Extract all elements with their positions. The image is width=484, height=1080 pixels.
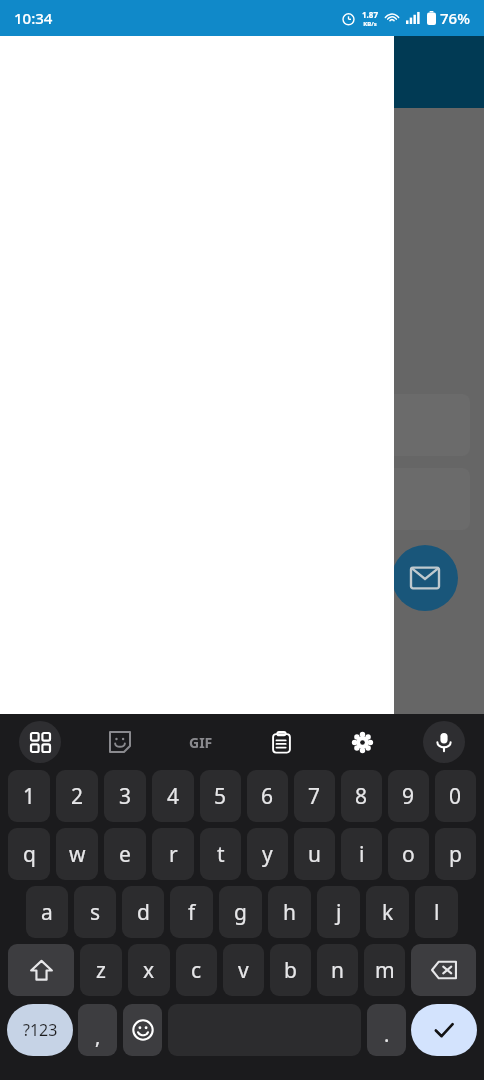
staticText: ,: [95, 1023, 101, 1050]
staticText: k: [382, 898, 394, 927]
staticText: 2: [71, 782, 84, 811]
staticText: c: [191, 956, 202, 985]
button[interactable]: b: [270, 944, 311, 996]
staticText: r: [169, 840, 178, 869]
staticText: l: [434, 898, 440, 927]
staticText: 76%: [440, 8, 470, 28]
staticText: 3: [119, 782, 132, 811]
button[interactable]: Send: [336, 1007, 394, 1080]
staticText: 1.87: [362, 9, 378, 20]
button[interactable]: j: [317, 886, 360, 938]
staticText: d: [137, 898, 150, 927]
button[interactable]: f: [170, 886, 213, 938]
button[interactable]: 7: [294, 770, 335, 822]
staticText: v: [238, 956, 249, 985]
button[interactable]: 6: [247, 770, 288, 822]
button[interactable]: 1: [8, 770, 50, 822]
staticText: e: [119, 840, 131, 869]
button[interactable]: x: [128, 944, 170, 996]
button[interactable]: .: [367, 1004, 406, 1056]
staticText: m: [375, 956, 395, 985]
button[interactable]: ,: [78, 1004, 117, 1056]
staticText: w: [69, 840, 86, 869]
staticText: x: [143, 956, 155, 985]
staticText: 1: [23, 782, 36, 811]
staticText: o: [402, 840, 415, 869]
button[interactable]: ?123: [7, 1004, 73, 1056]
button[interactable]: z: [80, 944, 122, 996]
staticText: p: [449, 840, 462, 869]
button[interactable]: Clipboard: [241, 714, 322, 770]
staticText: 6: [261, 782, 274, 811]
staticText: 0: [449, 782, 462, 811]
button[interactable]: Emoji: [123, 1004, 162, 1056]
button[interactable]: Stickers: [80, 714, 160, 770]
button[interactable]: Shift: [8, 944, 74, 996]
button[interactable]: 8: [341, 770, 382, 822]
button[interactable]: n: [317, 944, 358, 996]
button[interactable]: u: [294, 828, 335, 880]
button[interactable]: Backspace: [411, 944, 476, 996]
button[interactable]: y: [247, 828, 288, 880]
staticText: Hey! come Play with me.: [10, 1031, 336, 1057]
button[interactable]: d: [122, 886, 164, 938]
button[interactable]: k: [366, 886, 409, 938]
staticText: GIF: [189, 733, 213, 752]
staticText: 5: [214, 782, 227, 811]
button[interactable]: m: [364, 944, 405, 996]
button[interactable]: Settings: [322, 714, 403, 770]
button[interactable]: q: [8, 828, 50, 880]
staticText: j: [336, 898, 342, 927]
button[interactable]: v: [223, 944, 264, 996]
staticText: h: [283, 898, 296, 927]
staticText: .: [384, 1021, 390, 1048]
button[interactable]: 9: [388, 770, 429, 822]
button[interactable]: h: [268, 886, 311, 938]
staticText: u: [308, 840, 321, 869]
staticText: 9: [402, 782, 415, 811]
staticText: a: [41, 898, 53, 927]
button[interactable]: Apps: [0, 714, 80, 770]
button[interactable]: p: [435, 828, 476, 880]
button[interactable]: Voice input: [403, 714, 484, 770]
button[interactable]: 0: [435, 770, 476, 822]
staticText: b: [284, 956, 297, 985]
button[interactable]: o: [388, 828, 429, 880]
button[interactable]: w: [56, 828, 98, 880]
button[interactable]: r: [152, 828, 194, 880]
button[interactable]: g: [219, 886, 262, 938]
button[interactable]: i: [341, 828, 382, 880]
staticText: n: [331, 956, 344, 985]
button[interactable]: a: [26, 886, 68, 938]
staticText: g: [234, 898, 247, 927]
staticText: ?123: [23, 1019, 58, 1041]
staticText: y: [262, 840, 273, 869]
button[interactable]: e: [104, 828, 146, 880]
button[interactable]: c: [176, 944, 217, 996]
button[interactable]: Enter: [411, 1004, 477, 1056]
staticText: s: [90, 898, 101, 927]
button[interactable]: l: [415, 886, 458, 938]
button[interactable]: 5: [200, 770, 241, 822]
button[interactable]: Hey! come Play with me.: [0, 1007, 394, 1080]
button[interactable]: 3: [104, 770, 146, 822]
staticText: i: [359, 840, 365, 869]
button[interactable]: Compose mail: [392, 545, 458, 611]
staticText: z: [96, 956, 106, 985]
staticText: 10:34: [14, 8, 53, 28]
staticText: 8: [355, 782, 368, 811]
button[interactable]: 4: [152, 770, 194, 822]
staticText: q: [23, 840, 36, 869]
staticText: 4: [167, 782, 180, 811]
staticText: KB/s: [363, 20, 377, 28]
button[interactable]: 2: [56, 770, 98, 822]
button[interactable]: GIF: [160, 714, 241, 770]
staticText: f: [188, 898, 196, 927]
staticText: t: [217, 840, 225, 869]
button[interactable]: t: [200, 828, 241, 880]
button[interactable]: s: [74, 886, 116, 938]
staticText: 7: [308, 782, 321, 811]
